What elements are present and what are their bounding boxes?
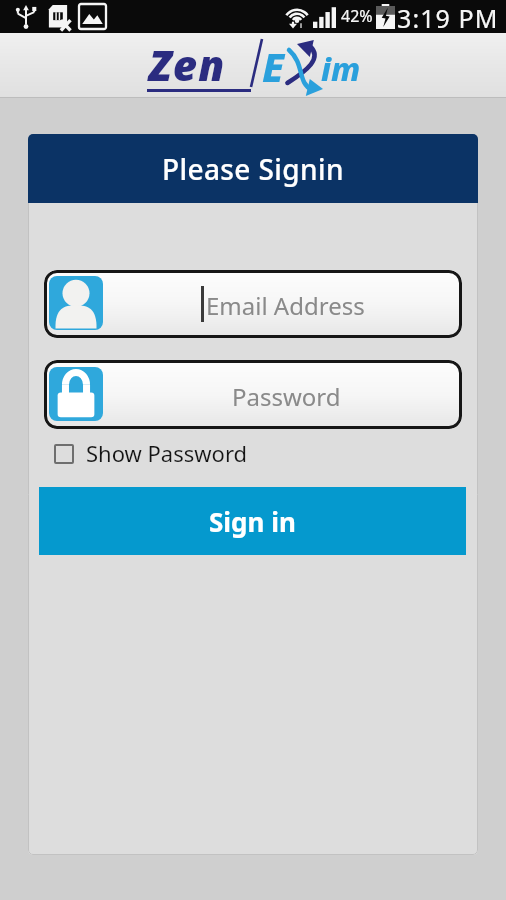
- button[interactable]: Sign in: [39, 487, 466, 555]
- button[interactable]: Show Password: [54, 438, 248, 468]
- staticText: Password: [232, 380, 341, 413]
- staticText: Please Signin: [162, 150, 344, 188]
- button[interactable]: Password: [44, 360, 462, 429]
- staticText: Zen: [149, 36, 226, 93]
- staticText: Show Password: [86, 438, 248, 468]
- button[interactable]: Email Address: [44, 270, 462, 338]
- staticText: E: [262, 39, 285, 93]
- staticText: Sign in: [209, 504, 296, 539]
- staticText: 3:19 PM: [397, 1, 499, 34]
- staticText: 42%: [341, 5, 373, 27]
- staticText: im: [321, 47, 361, 91]
- staticText: Email Address: [206, 289, 365, 322]
